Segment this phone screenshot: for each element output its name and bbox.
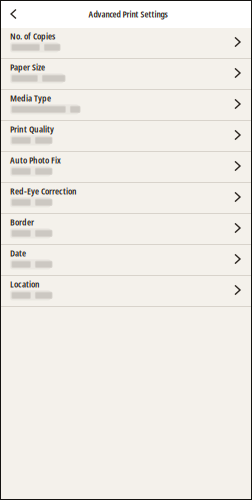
staticText: Paper Size xyxy=(10,60,45,73)
staticText: Red-Eye Correction xyxy=(10,184,77,197)
staticText: Location xyxy=(10,277,40,290)
button[interactable]: No. of Copies xyxy=(0,28,252,59)
button[interactable]: Border xyxy=(0,214,252,245)
staticText: Date xyxy=(10,246,26,259)
button[interactable]: Back xyxy=(0,0,27,28)
button[interactable]: Auto Photo Fix xyxy=(0,152,252,183)
button[interactable]: Print Quality xyxy=(0,121,252,152)
staticText: No. of Copies xyxy=(10,29,55,42)
button[interactable]: Media Type xyxy=(0,90,252,121)
button[interactable]: Red-Eye Correction xyxy=(0,183,252,214)
staticText: Print Quality xyxy=(10,122,54,135)
button[interactable]: Paper Size xyxy=(0,59,252,90)
staticText: Border xyxy=(10,215,34,228)
button[interactable]: Date xyxy=(0,245,252,276)
button[interactable]: Location xyxy=(0,276,252,307)
staticText: Advanced Print Settings xyxy=(88,8,167,20)
staticText: Auto Photo Fix xyxy=(10,153,61,166)
staticText: Media Type xyxy=(10,91,51,104)
